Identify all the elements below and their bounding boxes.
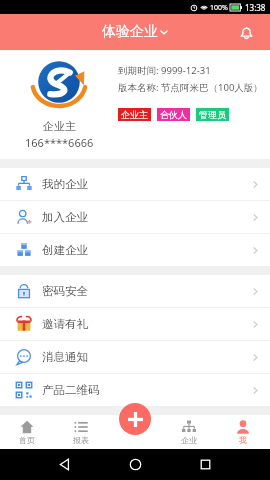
button[interactable]: 报表 bbox=[54, 415, 108, 449]
button[interactable]: 合伙人 bbox=[160, 109, 187, 120]
staticText: 166****6666 bbox=[25, 135, 94, 150]
other: Recents bbox=[199, 458, 212, 471]
staticText: 管理员 bbox=[199, 109, 226, 120]
button[interactable]: 产品二维码 bbox=[0, 374, 270, 406]
other: Back bbox=[58, 458, 71, 471]
button[interactable]: 我的企业 bbox=[0, 168, 270, 200]
staticText: 首页 bbox=[19, 435, 35, 445]
staticText: 邀请有礼 bbox=[42, 317, 88, 331]
staticText: 我 bbox=[239, 435, 247, 445]
staticText: 企业主 bbox=[43, 119, 76, 133]
staticText: 报表 bbox=[73, 435, 89, 445]
staticText: 企业主 bbox=[121, 109, 148, 120]
staticText: 产品二维码 bbox=[42, 383, 100, 397]
staticText: 企业 bbox=[181, 435, 197, 445]
staticText: 合伙人 bbox=[160, 109, 187, 120]
button[interactable]: Notifications bbox=[234, 20, 258, 44]
button[interactable]: Add bbox=[119, 403, 151, 435]
staticText: 到期时间: 9999-12-31 bbox=[118, 64, 211, 77]
button[interactable]: 首页 bbox=[0, 415, 54, 449]
staticText: 密码安全 bbox=[42, 284, 88, 298]
staticText: 消息通知 bbox=[42, 350, 88, 364]
button[interactable]: 企业主 bbox=[121, 109, 148, 120]
staticText: 体验企业 bbox=[102, 23, 158, 41]
button[interactable]: 加入企业 bbox=[0, 201, 270, 233]
button[interactable]: 创建企业 bbox=[0, 234, 270, 266]
button[interactable]: 邀请有礼 bbox=[0, 308, 270, 340]
button[interactable]: 管理员 bbox=[199, 109, 226, 120]
button[interactable]: 消息通知 bbox=[0, 341, 270, 373]
staticText: 100% bbox=[210, 3, 228, 13]
button[interactable]: 体验企业 bbox=[102, 23, 169, 41]
staticText: 13:38 bbox=[245, 2, 266, 13]
staticText: 创建企业 bbox=[42, 243, 88, 257]
staticText: 版本名称: 节点阿米巴（100人版） bbox=[118, 81, 263, 94]
staticText: 我的企业 bbox=[42, 177, 88, 191]
other: Home bbox=[129, 458, 142, 471]
button[interactable]: 密码安全 bbox=[0, 275, 270, 307]
button[interactable]: 我 bbox=[216, 415, 270, 449]
staticText: 加入企业 bbox=[42, 210, 88, 224]
button[interactable]: 企业 bbox=[162, 415, 216, 449]
